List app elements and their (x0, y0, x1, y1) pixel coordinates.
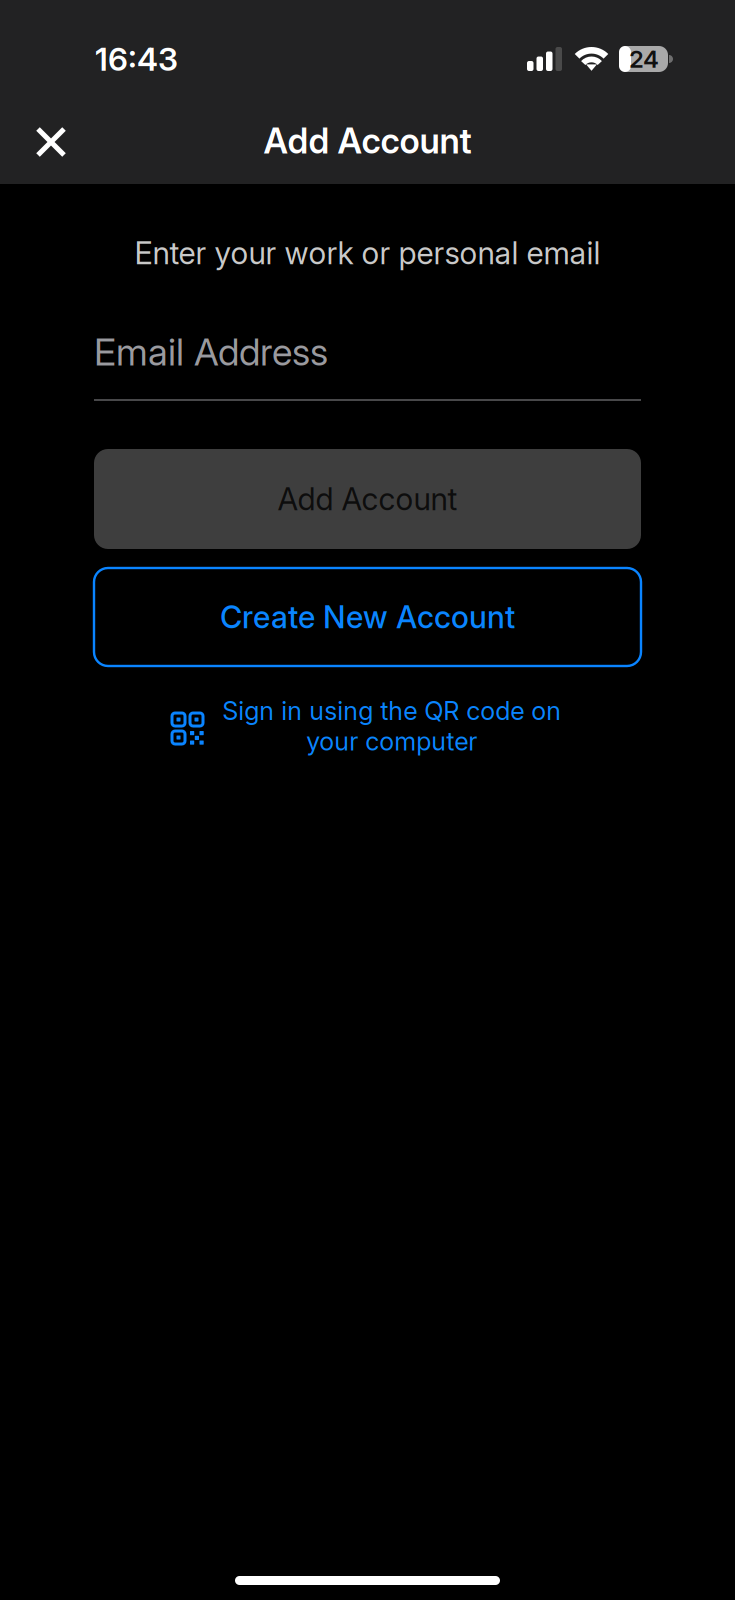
button[interactable]: Close (15, 106, 87, 178)
staticText: Sign in using the QR code on your comput… (222, 695, 561, 757)
button[interactable]: Sign in using the QR code on your comput… (170, 694, 570, 766)
staticText: Enter your work or personal email (134, 234, 600, 271)
staticText: Add Account (277, 480, 457, 517)
staticText: 24 (629, 44, 659, 73)
staticText: Create New Account (220, 598, 515, 635)
staticText: Add Account (263, 120, 471, 162)
staticText: 16:43 (95, 40, 178, 78)
button[interactable]: Create New Account (94, 568, 641, 666)
staticText: Email Address (94, 329, 328, 375)
button[interactable]: Add Account (94, 449, 641, 549)
